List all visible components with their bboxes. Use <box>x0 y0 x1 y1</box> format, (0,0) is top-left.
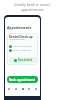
staticText: Reschedule <box>18 58 33 62</box>
staticText: Dr. Sarah Miller <box>9 38 26 41</box>
staticText: Tue, 12 Mar 2024 <box>13 45 32 48</box>
button[interactable]: Messages <box>26 86 32 92</box>
staticText: 09:30 - 10:00 AM <box>13 49 31 52</box>
staticText: Book appointment <box>9 78 36 82</box>
button[interactable]: Dental Check-up <box>7 33 38 65</box>
button[interactable]: Profile <box>33 86 39 92</box>
button[interactable]: Appointments <box>20 86 26 92</box>
staticText: Quickly book or cancel <box>14 2 50 7</box>
button[interactable]: Search <box>13 86 19 92</box>
button[interactable]: Book appointment <box>7 76 38 83</box>
button[interactable]: Reschedule <box>9 57 37 63</box>
staticText: Appointments <box>7 25 32 30</box>
staticText: appointments <box>21 7 44 12</box>
staticText: Dental Check-up <box>9 35 33 39</box>
button[interactable]: Home <box>6 86 12 92</box>
